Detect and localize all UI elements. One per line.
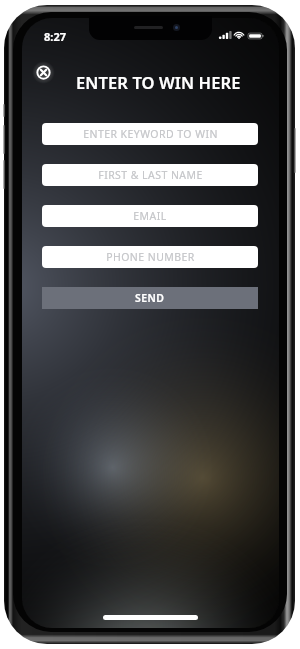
staticText: 8:27 bbox=[44, 29, 66, 44]
staticText: EMAIL bbox=[133, 209, 167, 223]
button[interactable]: EMAIL bbox=[42, 205, 258, 227]
staticText: SEND bbox=[135, 291, 165, 305]
staticText: FIRST & LAST NAME bbox=[98, 168, 203, 182]
button[interactable]: PHONE NUMBER bbox=[42, 246, 258, 268]
staticText: ENTER KEYWORD TO WIN bbox=[83, 127, 218, 141]
button[interactable]: ENTER KEYWORD TO WIN bbox=[42, 123, 258, 145]
button[interactable]: SEND bbox=[42, 287, 258, 309]
button[interactable]: Close bbox=[31, 60, 56, 85]
staticText: PHONE NUMBER bbox=[106, 250, 195, 264]
staticText: ENTER TO WIN HERE bbox=[76, 71, 241, 93]
button[interactable]: FIRST & LAST NAME bbox=[42, 164, 258, 186]
